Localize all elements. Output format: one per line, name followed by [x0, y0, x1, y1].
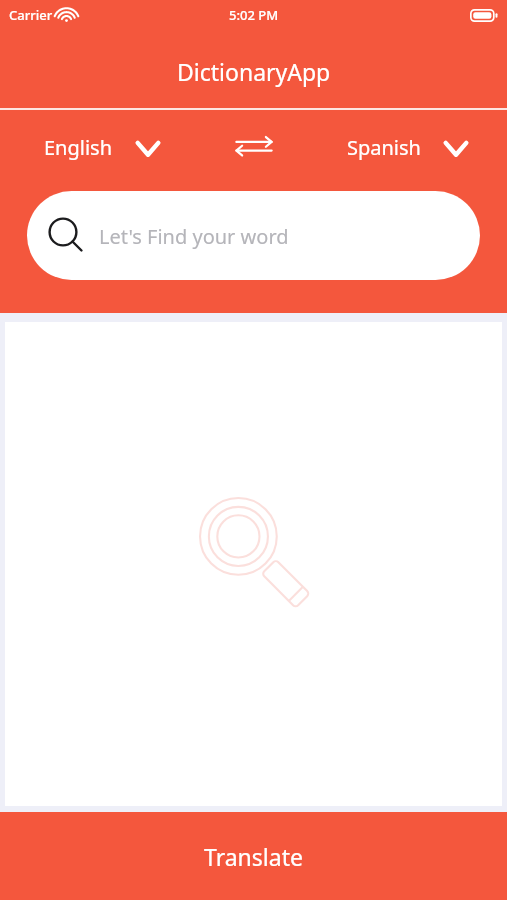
staticText: English — [44, 134, 113, 161]
staticText: Carrier — [9, 6, 53, 24]
staticText: Let's Find your word — [99, 223, 289, 250]
staticText: DictionaryApp — [177, 56, 331, 87]
staticText: Spanish — [347, 134, 421, 161]
staticText: Translate — [204, 841, 303, 872]
button[interactable]: Translate — [0, 812, 507, 900]
button[interactable]: Spanish — [347, 134, 469, 161]
button[interactable]: Let's Find your word — [27, 191, 480, 280]
button[interactable]: Swap languages — [232, 125, 276, 169]
staticText: 5:02 PM — [229, 6, 279, 24]
button[interactable]: English — [44, 134, 161, 161]
